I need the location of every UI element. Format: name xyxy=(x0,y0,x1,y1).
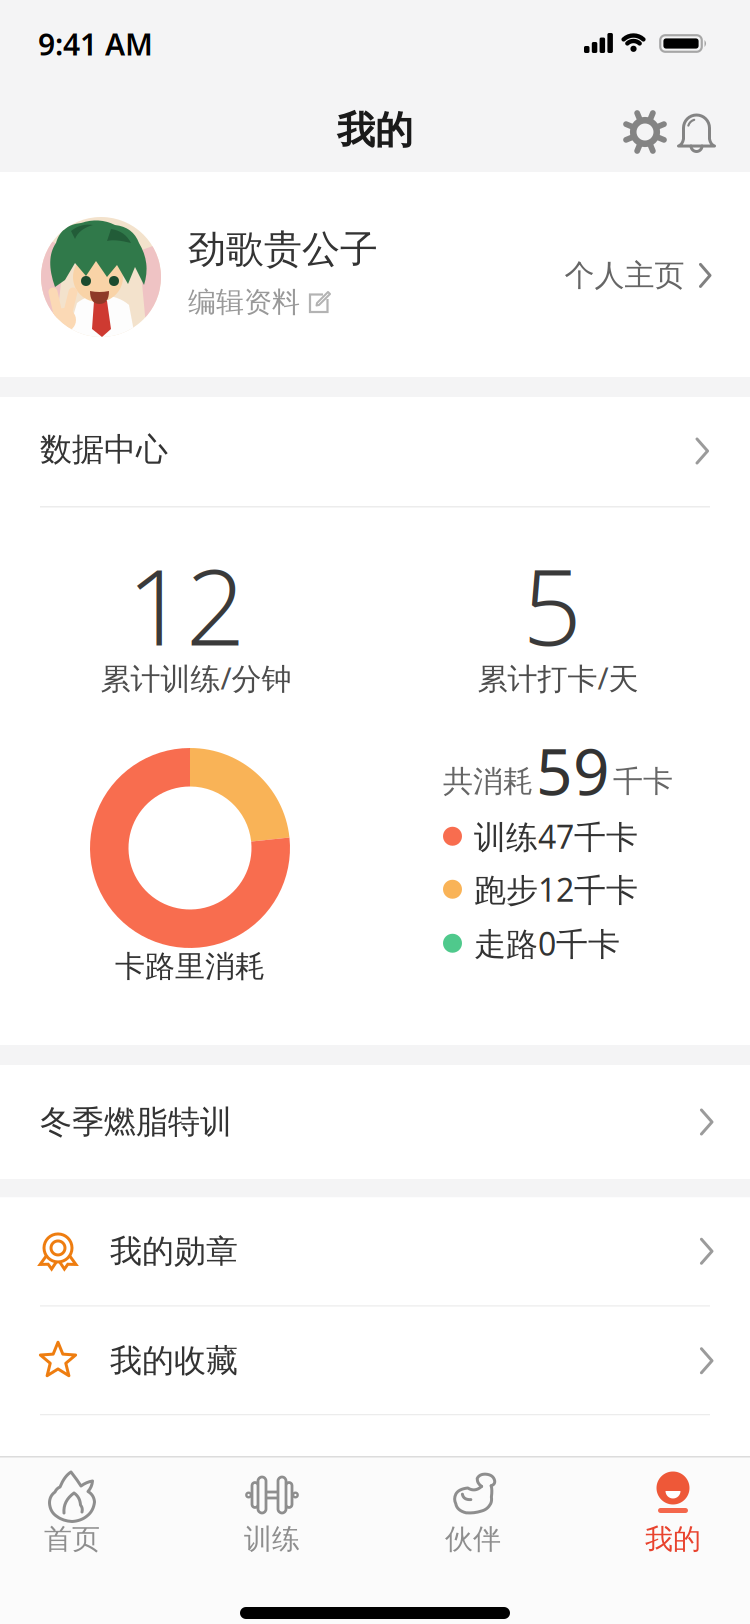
staticText: 训练47千卡 xyxy=(474,815,638,857)
button[interactable]: 数据中心 xyxy=(0,397,750,507)
staticText: 我的 xyxy=(337,107,413,154)
button[interactable] xyxy=(675,109,718,157)
staticText: 冬季燃脂特训 xyxy=(40,1102,232,1142)
staticText: 累计训练/分钟 xyxy=(100,658,291,698)
staticText: 个人主页 xyxy=(564,257,684,294)
staticText: 我的勋章 xyxy=(110,1232,238,1271)
staticText: 共消耗 xyxy=(443,763,533,800)
staticText: 5 xyxy=(522,536,581,674)
staticText: 劲歌贵公子 xyxy=(188,226,378,273)
staticText: 千卡 xyxy=(613,763,673,800)
button[interactable]: 训练 xyxy=(192,1456,352,1586)
staticText: 走路0千卡 xyxy=(474,922,620,964)
staticText: 59 xyxy=(536,728,610,813)
staticText: 数据中心 xyxy=(40,430,168,469)
staticText: 跑步12千卡 xyxy=(474,868,638,910)
button[interactable]: 冬季燃脂特训 xyxy=(0,1065,750,1179)
staticText: 9:41 AM xyxy=(38,24,153,64)
button[interactable]: 我的收藏 xyxy=(0,1307,750,1415)
button[interactable] xyxy=(621,108,669,156)
button[interactable]: 我的 xyxy=(593,1456,750,1586)
staticText: 编辑资料 xyxy=(188,285,300,319)
staticText: 我的收藏 xyxy=(110,1341,238,1380)
button[interactable]: 伙伴 xyxy=(393,1456,553,1586)
staticText: 伙伴 xyxy=(445,1522,501,1556)
staticText: 卡路里消耗 xyxy=(115,948,265,985)
staticText: 训练 xyxy=(244,1522,300,1556)
button[interactable]: 劲歌贵公子 xyxy=(0,172,750,377)
staticText: 12 xyxy=(127,536,245,674)
button[interactable]: 我的勋章 xyxy=(0,1197,750,1305)
staticText: 累计打卡/天 xyxy=(477,658,638,698)
staticText: 我的 xyxy=(645,1522,701,1556)
button[interactable]: 首页 xyxy=(0,1456,152,1586)
staticText: 首页 xyxy=(44,1522,100,1556)
